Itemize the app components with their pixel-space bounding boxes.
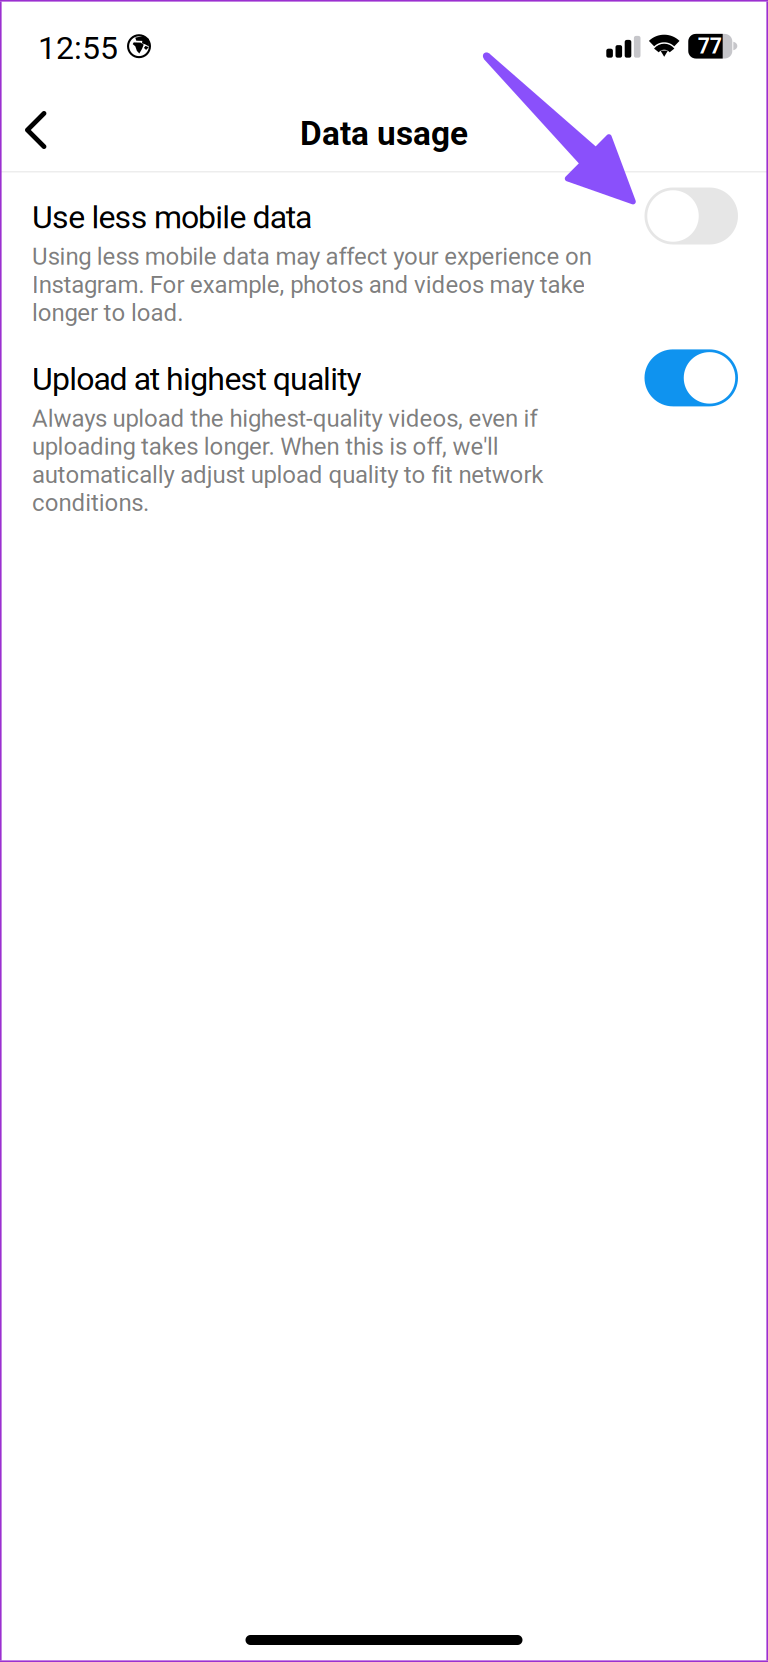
staticText: Upload at highest quality [32, 360, 361, 398]
staticText: Always upload the highest-quality videos… [32, 404, 543, 517]
button[interactable]: Back [11, 100, 60, 166]
staticText: 77 [698, 34, 722, 59]
button[interactable]: Upload at highest quality [634, 360, 738, 417]
button[interactable]: Use less mobile data [634, 198, 738, 255]
staticText: Use less mobile data [32, 198, 312, 236]
staticText: Using less mobile data may affect your e… [32, 242, 592, 327]
staticText: 12:55 [38, 29, 118, 67]
staticText: Data usage [300, 114, 468, 153]
